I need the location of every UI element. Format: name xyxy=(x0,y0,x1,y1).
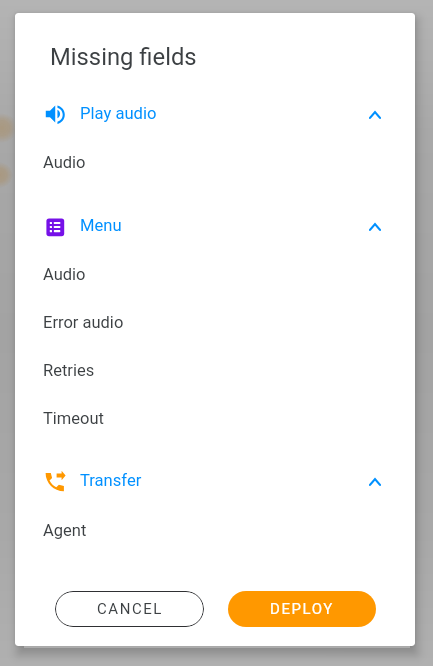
button[interactable]: CANCEL xyxy=(55,591,204,627)
button[interactable]: Collapse Menu xyxy=(363,215,387,239)
button[interactable]: Play audio xyxy=(15,91,415,139)
button[interactable]: Audio xyxy=(15,138,415,186)
staticText: DEPLOY xyxy=(270,600,334,618)
staticText: Retries xyxy=(43,361,95,380)
staticText: Audio xyxy=(43,153,86,172)
staticText: Agent xyxy=(43,521,87,540)
staticText: Menu xyxy=(80,216,122,235)
button[interactable]: Agent xyxy=(15,506,415,554)
button[interactable]: Audio xyxy=(15,250,415,298)
staticText: Transfer xyxy=(80,471,142,490)
button[interactable]: Collapse Play audio xyxy=(363,103,387,127)
button[interactable]: Collapse Transfer xyxy=(363,470,387,494)
staticText: CANCEL xyxy=(97,600,163,618)
staticText: Timeout xyxy=(43,409,104,428)
button[interactable]: DEPLOY xyxy=(228,591,376,627)
staticText: Play audio xyxy=(80,104,157,123)
button[interactable]: Timeout xyxy=(15,394,415,442)
button[interactable]: Menu xyxy=(15,203,415,251)
button[interactable]: Error audio xyxy=(15,298,415,346)
staticText: Missing fields xyxy=(50,43,197,71)
button[interactable]: Retries xyxy=(15,346,415,394)
button[interactable]: Transfer xyxy=(15,458,415,506)
staticText: Audio xyxy=(43,265,86,284)
staticText: Error audio xyxy=(43,313,124,332)
